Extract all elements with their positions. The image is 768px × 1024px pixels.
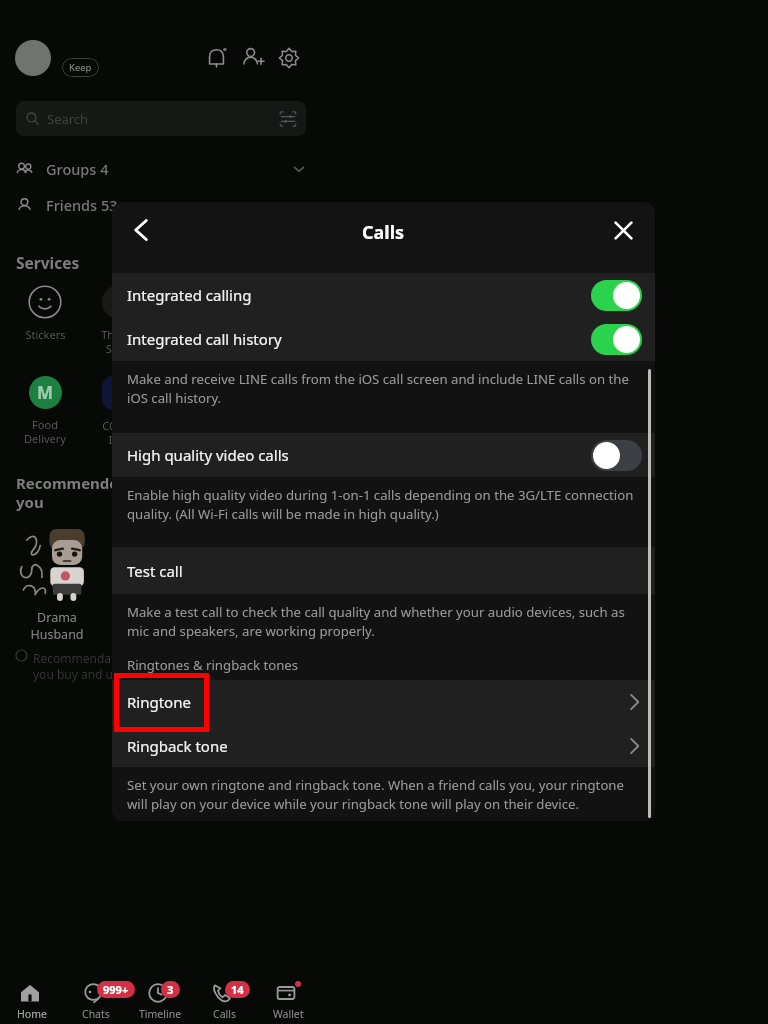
staticText: Integrated calling	[127, 285, 252, 305]
button[interactable]: LINE Gift	[156, 285, 230, 356]
button[interactable]: Search	[16, 101, 306, 136]
button[interactable]: Integrated call history	[112, 317, 655, 361]
button[interactable]: Groups 4	[0, 151, 322, 187]
staticText: Open Chat	[253, 327, 282, 356]
staticText: LINE Gift	[181, 327, 205, 356]
staticText: Recommendations based on what you buy an…	[33, 650, 225, 682]
button[interactable]: Ringtone	[112, 680, 655, 724]
button[interactable]: Settings	[275, 44, 303, 72]
button[interactable]: 999+	[64, 968, 128, 1024]
staticText: Test call	[127, 561, 183, 581]
staticText: See more	[253, 418, 281, 447]
staticText: Cute Cat	[252, 609, 280, 642]
staticText: Theme Shop	[101, 327, 137, 356]
button[interactable]: 3	[128, 968, 192, 1024]
staticText: 14	[231, 982, 244, 997]
button[interactable]: Ringback tone	[112, 724, 655, 767]
staticText: Integrated call history	[127, 329, 282, 349]
button[interactable]: Wallet	[256, 968, 320, 1024]
staticText: 3	[167, 982, 174, 997]
staticText: Home	[17, 1007, 47, 1021]
staticText: Chats	[82, 1007, 110, 1021]
button[interactable]: C	[82, 376, 156, 447]
button[interactable]: Close	[602, 209, 644, 251]
button[interactable]: Stickers	[8, 285, 82, 342]
staticText: Make and receive LINE calls from the iOS…	[127, 370, 644, 407]
staticText: M	[37, 381, 54, 404]
button[interactable]: Cute Cat	[214, 526, 318, 642]
staticText: Pam Pam	[148, 609, 175, 642]
button[interactable]: Back	[120, 209, 162, 251]
button[interactable]: High quality video calls	[112, 433, 655, 477]
staticText: Wallet	[273, 1007, 304, 1021]
staticText: 999+	[103, 982, 129, 997]
button[interactable]: 14	[192, 968, 256, 1024]
staticText: Timeline	[139, 1007, 182, 1021]
staticText: Ringtone	[127, 692, 191, 712]
staticText: Keep	[69, 61, 92, 74]
button[interactable]: LINE MAN	[156, 376, 230, 447]
staticText: Calls	[213, 1007, 236, 1021]
button[interactable]: Notifications	[202, 44, 230, 72]
button[interactable]: Add friends	[238, 44, 266, 72]
button[interactable]: Drama Husband	[4, 526, 109, 642]
button[interactable]: Pam Pam	[109, 526, 214, 642]
button[interactable]: Friends 53	[0, 187, 322, 223]
staticText: Enable high quality video during 1-on-1 …	[127, 486, 644, 523]
button[interactable]: Home	[0, 968, 64, 1024]
staticText: Drama Husband	[30, 609, 84, 642]
staticText: Set your own ringtone and ringback tone.…	[127, 776, 644, 813]
staticText: Calls	[362, 220, 405, 245]
button[interactable]: Open Chat	[230, 285, 304, 356]
button[interactable]: Integrated calling	[112, 273, 655, 317]
button[interactable]: M	[8, 376, 82, 446]
staticText: Ringtones & ringback tones	[127, 656, 299, 674]
staticText: Food Delivery	[24, 417, 66, 446]
staticText: Recommended for you	[16, 473, 154, 512]
staticText: Stickers	[25, 327, 66, 342]
staticText: Ringback tone	[127, 736, 228, 756]
staticText: Make a test call to check the call quali…	[127, 603, 644, 640]
button[interactable]: Test call	[112, 547, 655, 594]
button[interactable]: See more	[230, 376, 304, 447]
staticText: High quality video calls	[127, 445, 289, 465]
staticText: LINE MAN	[180, 418, 206, 447]
staticText: Search	[47, 110, 89, 128]
staticText: COVID Info	[102, 418, 136, 447]
staticText: Services	[16, 252, 80, 273]
staticText: Groups 4	[46, 159, 109, 179]
staticText: Friends 53	[46, 195, 118, 215]
button[interactable]: Theme Shop	[82, 285, 156, 356]
